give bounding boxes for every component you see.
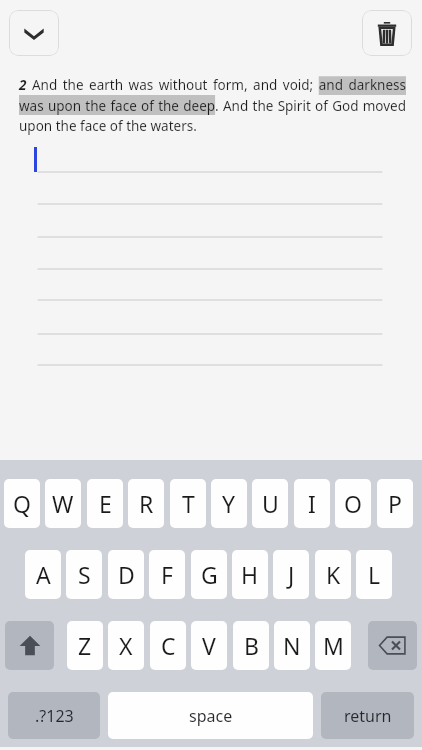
staticText: return [344,705,392,727]
staticText: Z [78,630,92,661]
button[interactable]: return [321,692,414,739]
staticText: O [344,488,362,519]
button[interactable]: T [170,479,206,528]
staticText: W [52,488,74,519]
button[interactable]: W [45,479,81,528]
staticText: L [368,559,381,590]
button[interactable]: Q [4,479,40,528]
button[interactable]: N [274,621,310,670]
button[interactable]: .?123 [8,692,100,739]
button[interactable]: M [315,621,351,670]
button[interactable]: J [273,550,309,599]
staticText: C [161,630,176,661]
staticText: I [308,488,316,519]
staticText: V [202,630,216,661]
button[interactable]: P [377,479,413,528]
button[interactable]: B [233,621,269,670]
button[interactable]: G [191,550,227,599]
button[interactable]: C [150,621,186,670]
button[interactable]: Z [67,621,103,670]
staticText: N [283,630,301,661]
button[interactable]: Delete [362,10,412,56]
button[interactable]: space [108,692,313,739]
button[interactable]: Shift [5,621,54,670]
staticText: T [182,488,195,519]
button[interactable]: Collapse [9,10,59,56]
staticText: M [323,630,344,661]
button[interactable]: K [315,550,351,599]
staticText: F [161,559,173,590]
staticText: S [78,559,91,590]
button[interactable]: D [108,550,144,599]
button[interactable]: S [66,550,102,599]
button[interactable]: F [149,550,185,599]
staticText: P [388,488,402,519]
staticText: U [262,488,279,519]
staticText: space [189,705,233,727]
button[interactable]: X [108,621,144,670]
staticText: 2 And the earth was without form, and vo… [19,76,406,135]
button[interactable]: Backspace [368,621,417,670]
button[interactable]: A [25,550,61,599]
staticText: D [118,559,135,590]
staticText: R [139,488,154,519]
staticText: K [326,559,341,590]
button[interactable]: V [191,621,227,670]
button[interactable]: R [128,479,164,528]
staticText: B [244,630,259,661]
button[interactable]: L [356,550,392,599]
staticText: Y [222,488,236,519]
staticText: Q [13,488,31,519]
button[interactable]: E [87,479,123,528]
staticText: J [288,559,295,590]
button[interactable]: O [335,479,371,528]
button[interactable]: U [252,479,288,528]
staticText: H [241,559,259,590]
staticText: .?123 [35,705,74,727]
staticText: G [201,559,218,590]
staticText: E [99,488,112,519]
staticText: A [36,559,51,590]
button[interactable]: I [294,479,330,528]
button[interactable]: Y [211,479,247,528]
button[interactable]: H [232,550,268,599]
staticText: X [119,630,133,661]
